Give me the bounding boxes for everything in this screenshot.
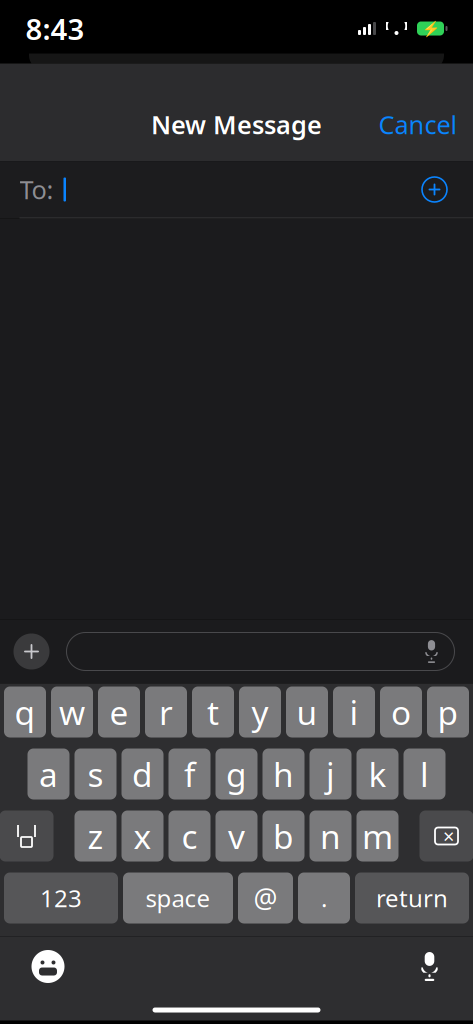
button[interactable]: Dictation: [407, 942, 451, 991]
staticText: New Message: [151, 108, 322, 141]
staticText: g: [226, 752, 247, 796]
button[interactable]: n: [309, 810, 351, 861]
staticText: d: [132, 752, 153, 796]
staticText: To:: [19, 173, 53, 206]
button[interactable]: r: [145, 686, 187, 737]
button[interactable]: s: [74, 748, 116, 799]
staticText: i: [349, 690, 358, 734]
staticText: @: [253, 880, 277, 916]
staticText: z: [87, 814, 103, 858]
button[interactable]: Emoji: [21, 940, 74, 993]
staticText: y: [251, 690, 268, 734]
button[interactable]: z: [74, 810, 116, 861]
staticText: x: [133, 814, 151, 858]
staticText: return: [376, 882, 448, 914]
staticText: q: [14, 690, 35, 734]
button[interactable]: return: [355, 872, 469, 923]
button[interactable]: h: [262, 748, 304, 799]
button[interactable]: a: [27, 748, 69, 799]
staticText: p: [437, 690, 458, 734]
button[interactable]: .: [298, 872, 350, 923]
staticText: 123: [40, 882, 82, 914]
staticText: j: [326, 752, 335, 796]
button[interactable]: c: [168, 810, 210, 861]
staticText: r: [159, 690, 173, 734]
button[interactable]: m: [356, 810, 398, 861]
button[interactable]: Add contact: [415, 170, 453, 208]
staticText: Cancel: [378, 108, 457, 141]
staticText: v: [228, 814, 245, 858]
button[interactable]: u: [286, 686, 328, 737]
button[interactable]: b: [262, 810, 304, 861]
staticText: ⚡: [421, 20, 439, 37]
staticText: space: [145, 882, 210, 914]
button[interactable]: Cancel: [358, 96, 473, 153]
staticText: o: [391, 690, 411, 734]
button[interactable]: f: [168, 748, 210, 799]
staticText: w: [59, 690, 85, 734]
staticText: l: [420, 752, 429, 796]
button[interactable]: g: [215, 748, 257, 799]
button[interactable]: t: [192, 686, 234, 737]
button[interactable]: 123: [4, 872, 118, 923]
staticText: u: [296, 690, 317, 734]
button[interactable]: l: [403, 748, 445, 799]
staticText: .: [321, 882, 327, 914]
button[interactable]: w: [51, 686, 93, 737]
button[interactable]: Delete: [419, 810, 473, 861]
button[interactable]: Add attachment: [13, 633, 49, 669]
button[interactable]: q: [4, 686, 46, 737]
button[interactable]: Shift: [0, 810, 53, 861]
staticText: b: [273, 814, 294, 858]
button[interactable]: x: [121, 810, 163, 861]
staticText: c: [181, 814, 197, 858]
staticText: 8:43: [25, 9, 84, 48]
button[interactable]: v: [215, 810, 257, 861]
staticText: m: [362, 814, 393, 858]
button[interactable]: o: [380, 686, 422, 737]
staticText: s: [87, 752, 103, 796]
button[interactable]: @: [238, 872, 293, 923]
button[interactable]: p: [427, 686, 469, 737]
staticText: k: [368, 752, 386, 796]
button[interactable]: e: [98, 686, 140, 737]
button[interactable]: i: [333, 686, 375, 737]
button[interactable]: j: [309, 748, 351, 799]
button[interactable]: y: [239, 686, 281, 737]
button[interactable]: space: [123, 872, 233, 923]
staticText: a: [39, 752, 58, 796]
button[interactable]: k: [356, 748, 398, 799]
staticText: f: [184, 752, 195, 796]
staticText: h: [273, 752, 294, 796]
staticText: e: [109, 690, 128, 734]
staticText: t: [207, 690, 219, 734]
staticText: ×: [443, 823, 454, 849]
button[interactable]: [66, 632, 454, 670]
button[interactable]: d: [121, 748, 163, 799]
staticText: n: [320, 814, 341, 858]
